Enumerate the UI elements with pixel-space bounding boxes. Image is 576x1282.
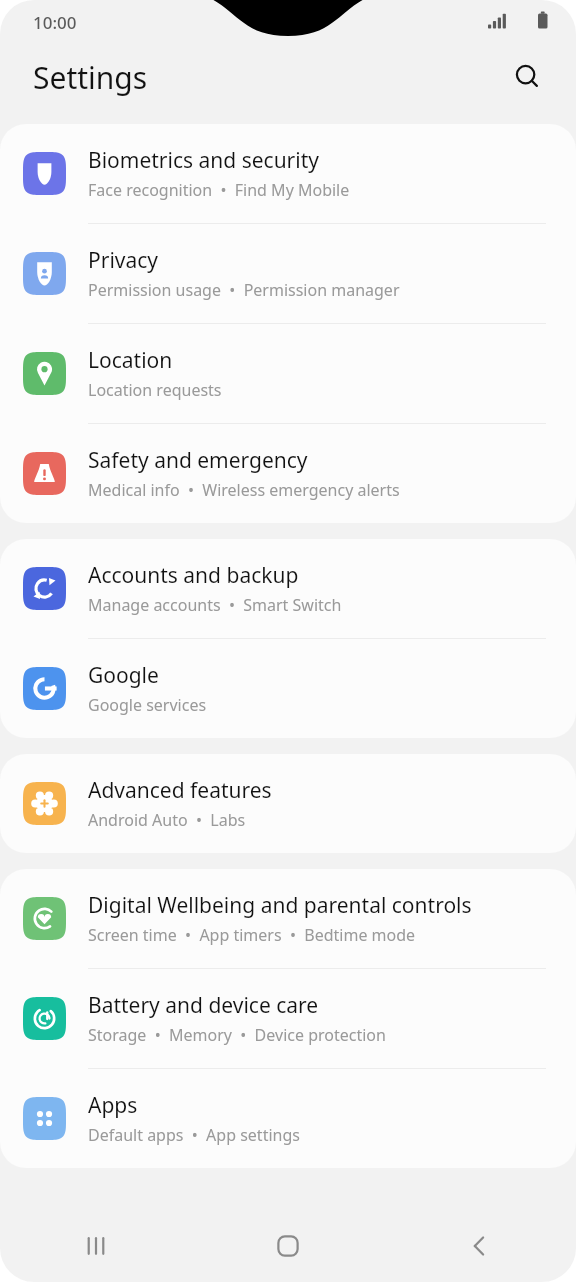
staticText: Accounts and backup [88,561,299,590]
staticText: Google services [88,694,207,716]
staticText: Location [88,346,173,375]
staticText: Biometrics and security [88,146,319,175]
button[interactable]: Advanced features [0,754,576,853]
button[interactable]: Safety and emergency [0,424,576,523]
staticText: Storage • Memory • Device protection [88,1024,386,1046]
button[interactable]: Recent apps [0,1210,192,1282]
staticText: Android Auto • Labs [88,809,246,831]
staticText: Battery and device care [88,991,319,1020]
staticText: Digital Wellbeing and parental controls [88,891,472,920]
staticText: Privacy [88,246,159,275]
button[interactable]: Google [0,639,576,738]
button[interactable]: Biometrics and security [0,124,576,223]
button[interactable]: Home [192,1210,384,1282]
staticText: Manage accounts • Smart Switch [88,594,342,616]
staticText: Face recognition • Find My Mobile [88,179,350,201]
staticText: Settings [33,57,148,98]
staticText: Medical info • Wireless emergency alerts [88,479,400,501]
staticText: Advanced features [88,776,272,805]
staticText: Safety and emergency [88,446,308,475]
button[interactable]: Back [384,1210,576,1282]
button[interactable]: Battery and device care [0,969,576,1068]
button[interactable]: Accounts and backup [0,539,576,638]
staticText: Apps [88,1091,138,1120]
button[interactable]: Search [502,51,554,103]
staticText: Permission usage • Permission manager [88,279,400,301]
staticText: 10:00 [33,11,77,34]
button[interactable]: Location [0,324,576,423]
button[interactable]: Apps [0,1069,576,1168]
button[interactable]: Privacy [0,224,576,323]
staticText: Default apps • App settings [88,1124,300,1146]
staticText: Google [88,661,159,690]
staticText: Screen time • App timers • Bedtime mode [88,924,416,946]
staticText: Location requests [88,379,222,401]
button[interactable]: Digital Wellbeing and parental controls [0,869,576,968]
